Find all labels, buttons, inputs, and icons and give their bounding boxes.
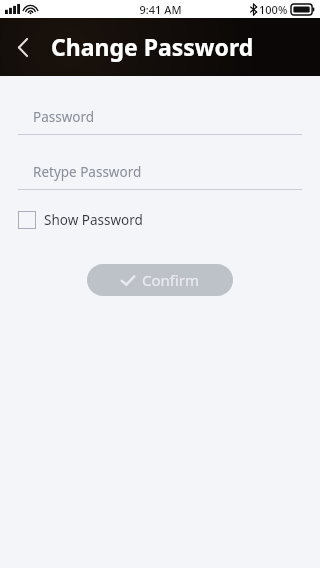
button[interactable]: Confirm: [87, 264, 233, 296]
staticText: Retype Password: [33, 163, 142, 181]
staticText: Change Password: [51, 31, 254, 62]
staticText: Password: [33, 108, 95, 126]
staticText: Show Password: [44, 211, 143, 229]
staticText: Confirm: [142, 270, 200, 290]
button[interactable]: Password: [18, 105, 302, 135]
button[interactable]: Retype Password: [18, 160, 302, 190]
button[interactable]: Show Password: [18, 211, 143, 229]
staticText: 100%: [259, 2, 288, 17]
staticText: 9:41 AM: [139, 2, 182, 17]
button[interactable]: Back: [6, 30, 40, 64]
